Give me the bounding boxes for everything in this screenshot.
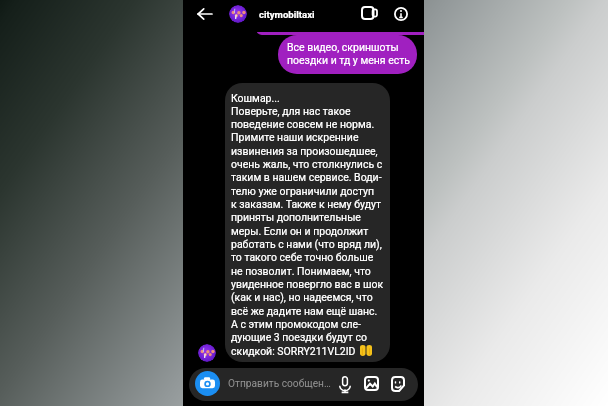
staticText: не позволит. Понимаем, что [231,265,371,277]
staticText: дующие 3 поездки будут со [231,331,367,343]
staticText: приняты дополнительные [231,211,361,223]
staticText: то такого себе точно больше [231,251,374,263]
button[interactable]: Video call [352,4,371,23]
staticText: Все видео, скриншоты [287,41,399,53]
staticText: скидкой: SORRY211VL2ID [231,345,356,357]
button[interactable]: Кошмар... [225,83,390,362]
button[interactable]: Back [193,2,216,25]
staticText: очень жаль, что столкнулись с [231,158,383,170]
button[interactable]: Gallery [362,374,381,393]
staticText: Кошмар... [231,92,280,104]
staticText: меры. Если он и продолжит [231,225,369,237]
staticText: таким в нашем сервисе. Води- [231,171,382,183]
staticText: Поверьте, для нас такое [231,105,351,117]
staticText: (как и нас), но надеемся, что [231,291,373,303]
button[interactable]: Info [388,1,414,27]
staticText: поездки и тд у меня есть [287,54,411,66]
staticText: А с этим промокодом сле- [231,318,361,330]
staticText: извинения за произошедшее, [231,145,378,157]
staticText: Отправить сообщен… [228,378,331,390]
button[interactable]: citymobiltaxi [229,0,315,28]
button[interactable]: Stickers [388,374,407,394]
staticText: телю уже ограничили доступ [231,185,375,197]
button[interactable]: Все видео, скриншоты [278,35,417,74]
staticText: увиденное повергло вас в шок [231,278,384,290]
button[interactable]: Voice message [336,372,354,396]
staticText: всё же дадите нам ещё шанс. [231,305,378,317]
staticText: Примите наши искренние [231,131,359,143]
staticText: поведение совсем не норма. [231,118,375,130]
staticText: работать с нами (что вряд ли), [231,238,382,250]
button[interactable]: Camera [195,371,220,396]
staticText: citymobiltaxi [259,9,315,20]
staticText: к заказам. Также к нему будут [231,198,382,210]
